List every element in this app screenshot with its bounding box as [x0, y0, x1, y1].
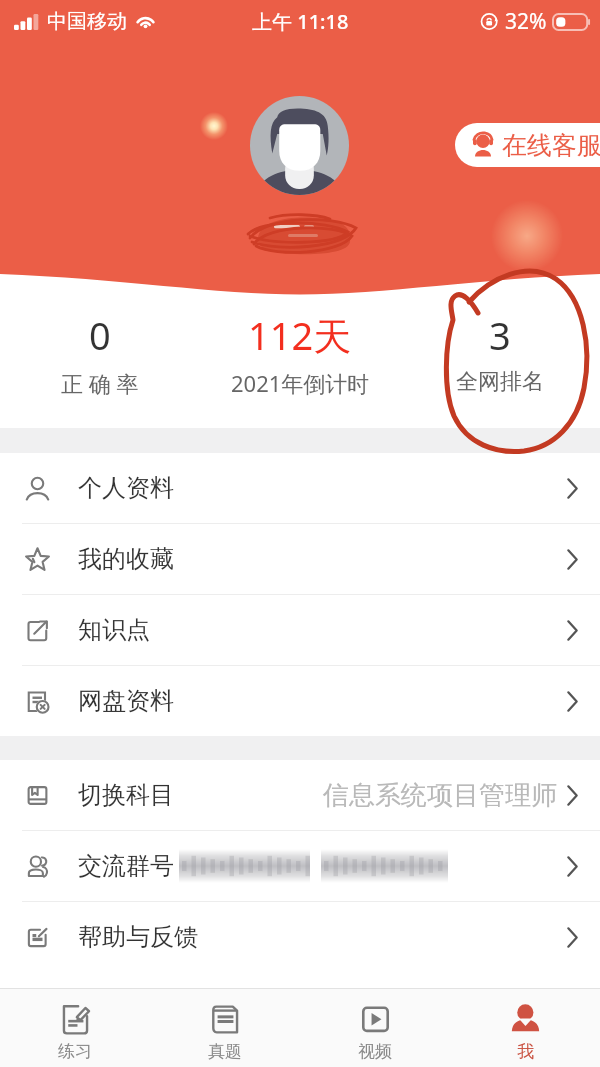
staticText: 在线客服 — [502, 130, 600, 161]
button[interactable]: 真题 — [150, 989, 300, 1067]
button[interactable]: 网盘资料 — [0, 666, 600, 736]
button[interactable]: 交流群号 — [0, 831, 600, 901]
staticText: 0 — [89, 309, 111, 361]
staticText: 交流群号 — [78, 851, 174, 881]
staticText: 正 确 率 — [61, 368, 139, 398]
staticText: 112天 — [248, 309, 352, 361]
button[interactable]: 知识点 — [0, 595, 600, 665]
button[interactable]: 视频 — [300, 989, 450, 1067]
button[interactable]: 个人资料 — [0, 453, 600, 523]
button[interactable]: 我的收藏 — [0, 524, 600, 594]
staticText: 全网排名 — [456, 368, 544, 396]
staticText: 我 — [517, 1041, 534, 1062]
staticText: 切换科目 — [78, 780, 174, 810]
staticText: 网盘资料 — [78, 686, 174, 716]
button[interactable]: 切换科目 — [0, 760, 600, 830]
staticText: 真题 — [208, 1041, 242, 1062]
staticText: 知识点 — [78, 615, 150, 645]
staticText: 帮助与反馈 — [78, 922, 198, 952]
staticText: 32% — [505, 7, 547, 36]
staticText: 个人资料 — [78, 473, 174, 503]
staticText: 中国移动 — [47, 9, 127, 34]
staticText: 练习 — [58, 1041, 92, 1062]
button[interactable]: 练习 — [0, 989, 150, 1067]
staticText: 信息系统项目管理师 — [323, 779, 557, 812]
staticText: 2021年倒计时 — [231, 368, 370, 398]
staticText: 我的收藏 — [78, 544, 174, 574]
button[interactable]: 帮助与反馈 — [0, 902, 600, 972]
staticText: 3 — [489, 309, 511, 361]
button[interactable]: 在线客服 — [455, 123, 600, 167]
button[interactable]: 我 — [450, 989, 600, 1067]
staticText: 视频 — [358, 1041, 392, 1062]
staticText: 上午 11:18 — [252, 8, 349, 35]
